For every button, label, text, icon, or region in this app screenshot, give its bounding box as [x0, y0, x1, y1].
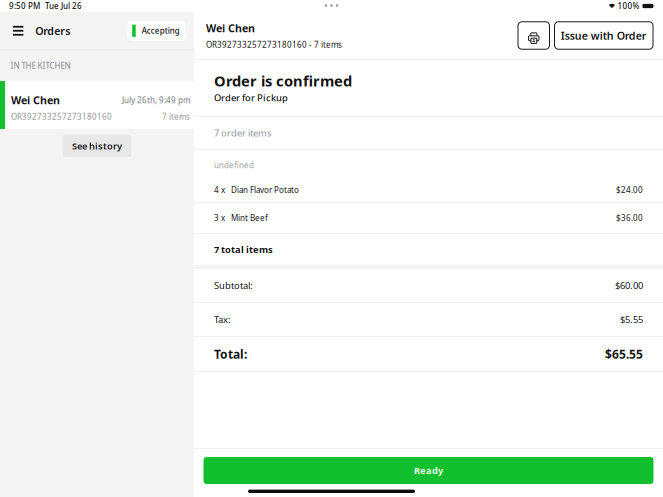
staticText: Orders — [35, 24, 70, 38]
staticText: OR392733257273180160 — [11, 111, 112, 122]
staticText: 9:50 PM — [9, 1, 40, 11]
staticText: $36.00 — [616, 213, 643, 223]
staticText: Issue with Order — [561, 28, 647, 43]
staticText: $5.55 — [620, 313, 643, 326]
staticText: 4 x Dian Flavor Potato — [214, 184, 299, 195]
staticText: $60.00 — [615, 279, 643, 292]
staticText: OR392733257273180160 - 7 items — [206, 39, 342, 50]
button[interactable]: Ready — [203, 457, 653, 484]
button[interactable]: Menu — [10, 19, 26, 43]
staticText: Order is confirmed — [214, 71, 352, 90]
staticText: Wei Chen — [206, 21, 255, 35]
staticText: Accepting — [142, 25, 180, 36]
staticText: Tax: — [214, 313, 231, 326]
staticText: July 26th, 9:49 pm — [122, 95, 190, 105]
staticText: Total: — [214, 346, 247, 362]
staticText: Tue Jul 26 — [45, 1, 82, 11]
button[interactable]: Accepting — [127, 21, 185, 40]
staticText: 3 x Mint Beef — [214, 213, 268, 223]
staticText: 100% — [617, 1, 639, 11]
button[interactable]: Issue with Order — [554, 22, 653, 49]
staticText: Order for Pickup — [214, 91, 288, 104]
staticText: See history — [72, 140, 122, 152]
button[interactable]: See history — [62, 135, 131, 157]
staticText: 7 order items — [214, 127, 271, 139]
staticText: IN THE KITCHEN — [10, 60, 70, 71]
button[interactable]: Print receipt — [518, 22, 549, 49]
button[interactable]: Wei Chen — [0, 81, 194, 129]
staticText: 7 items — [162, 111, 190, 122]
staticText: $65.55 — [605, 346, 643, 362]
staticText: Ready — [414, 464, 443, 477]
staticText: Wei Chen — [11, 93, 60, 107]
staticText: 7 total items — [214, 243, 273, 256]
staticText: $24.00 — [616, 184, 643, 195]
staticText: Subtotal: — [214, 279, 253, 292]
staticText: undefined — [214, 160, 254, 170]
